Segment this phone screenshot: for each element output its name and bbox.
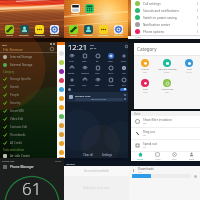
button[interactable]: Torch xyxy=(104,63,117,75)
button[interactable] xyxy=(120,88,127,91)
button[interactable]: Messages xyxy=(34,25,45,37)
staticText: Camera xyxy=(71,13,80,16)
staticText: Security scan xyxy=(75,94,91,97)
button[interactable]: Search xyxy=(0,83,57,91)
button[interactable]: Notification center xyxy=(131,21,200,28)
staticText: Messages xyxy=(98,34,109,37)
button[interactable]: Wi-Fi xyxy=(65,51,78,63)
button[interactable]: Flash xyxy=(117,51,130,63)
staticText: All Credit xyxy=(10,141,22,145)
staticText: Phone xyxy=(70,34,77,37)
staticText: 1/3 xyxy=(138,171,142,174)
button[interactable]: Internal Storage xyxy=(0,53,57,61)
button[interactable]: Camera xyxy=(71,4,80,16)
staticText: BT xyxy=(96,60,99,63)
staticText: Call settings xyxy=(143,2,161,6)
button[interactable]: Speak out xyxy=(131,140,200,151)
staticText: Auto xyxy=(95,72,100,75)
button[interactable]: Settings xyxy=(50,25,59,37)
button[interactable]: Desktop Wallpap xyxy=(156,59,178,74)
staticText: Aa/Aa xyxy=(186,71,192,74)
button[interactable]: Cast xyxy=(78,75,91,87)
staticText: Tool xyxy=(172,158,177,161)
staticText: free xyxy=(165,91,169,94)
button[interactable]: Clone xyxy=(65,75,78,87)
button[interactable]: Storage Specific xyxy=(0,75,57,83)
button[interactable]: Theme xyxy=(134,59,156,74)
staticText: Tap to scan now xyxy=(91,98,107,101)
button[interactable]: Lockscreen xyxy=(156,79,178,94)
staticText: Mine xyxy=(189,158,195,161)
staticText: Contacts xyxy=(83,34,93,37)
staticText: Jan 23 xyxy=(90,47,97,50)
button[interactable]: Calc xyxy=(85,4,94,16)
button[interactable]: Tool xyxy=(166,152,183,161)
staticText: Sounds and notifications xyxy=(143,9,179,13)
staticText: Eye xyxy=(122,84,126,87)
button[interactable]: Local xyxy=(149,152,166,161)
button[interactable]: Show filter invitation xyxy=(131,116,200,127)
staticText: Contacts Edit xyxy=(10,125,28,129)
button[interactable]: Split xyxy=(91,75,104,87)
button[interactable]: Smart SIM xyxy=(0,107,57,115)
button[interactable]: Thumbnails xyxy=(0,131,57,139)
button[interactable]: Mine xyxy=(183,152,200,161)
staticText: Tone xyxy=(108,60,113,63)
button[interactable]: Settings xyxy=(114,25,123,37)
staticText: Phone Manager xyxy=(10,165,34,169)
staticText: Video Edit xyxy=(10,117,24,121)
button[interactable]: Air safe Create xyxy=(0,153,57,158)
staticText: Rotate xyxy=(68,72,75,75)
button[interactable]: Phone xyxy=(69,25,78,37)
button[interactable]: Power xyxy=(104,75,117,87)
staticText: Air safe Create xyxy=(10,154,30,158)
button[interactable]: Contacts xyxy=(19,25,29,37)
staticText: Ring xyxy=(143,88,148,91)
button[interactable]: Eye xyxy=(117,75,130,87)
staticText: 61 xyxy=(22,177,42,200)
button[interactable]: Contacts xyxy=(83,25,93,37)
button[interactable]: Video Edit xyxy=(0,115,57,123)
staticText: Airplane xyxy=(81,72,89,75)
staticText: Phone Mgr xyxy=(2,159,15,162)
button[interactable]: Security xyxy=(0,99,57,107)
staticText: Settings xyxy=(50,34,59,37)
button[interactable]: Switch to power-saving xyxy=(131,14,200,21)
button[interactable]: Auto xyxy=(91,63,104,75)
button[interactable]: Contacts Edit xyxy=(0,123,57,131)
button[interactable]: Call settings xyxy=(131,0,200,7)
button[interactable]: External Storage xyxy=(0,61,57,69)
button[interactable]: Ring xyxy=(134,79,156,94)
button[interactable]: Home xyxy=(131,152,149,161)
staticText: Phone options xyxy=(143,30,165,34)
staticText: Power xyxy=(108,84,114,87)
button[interactable]: Data xyxy=(78,51,91,63)
staticText: Desktop Wallpap xyxy=(158,68,177,71)
staticText: Show filter invitation xyxy=(143,118,172,122)
button[interactable]: BT xyxy=(91,51,104,63)
staticText: External Storage xyxy=(10,63,33,67)
staticText: Cast xyxy=(82,84,87,87)
staticText: tap xyxy=(143,122,147,125)
button[interactable]: Phone options xyxy=(131,28,200,35)
button[interactable]: Tone xyxy=(104,51,117,63)
staticText: File Browser xyxy=(3,47,24,52)
staticText: Category xyxy=(3,70,15,74)
staticText: Speak out xyxy=(143,142,158,146)
button[interactable]: People xyxy=(0,91,57,99)
staticText: Home xyxy=(137,158,144,161)
button[interactable]: NFC xyxy=(117,63,130,75)
staticText: Category xyxy=(137,46,157,52)
button[interactable]: Sounds and notifications xyxy=(131,7,200,14)
button[interactable]: Rotate xyxy=(65,63,78,75)
staticText: Downloads xyxy=(138,167,154,171)
button[interactable]: All Credit xyxy=(0,139,57,147)
button[interactable]: Messages xyxy=(98,25,109,37)
staticText: Notification center xyxy=(143,23,171,27)
button[interactable]: Airplane xyxy=(78,63,91,75)
button[interactable]: Phone xyxy=(5,25,14,37)
button[interactable]: Font xyxy=(178,59,200,74)
button[interactable]: Ring out xyxy=(131,128,200,139)
staticText: Internal Storage xyxy=(10,55,33,59)
button[interactable]: Security scan xyxy=(67,92,128,102)
